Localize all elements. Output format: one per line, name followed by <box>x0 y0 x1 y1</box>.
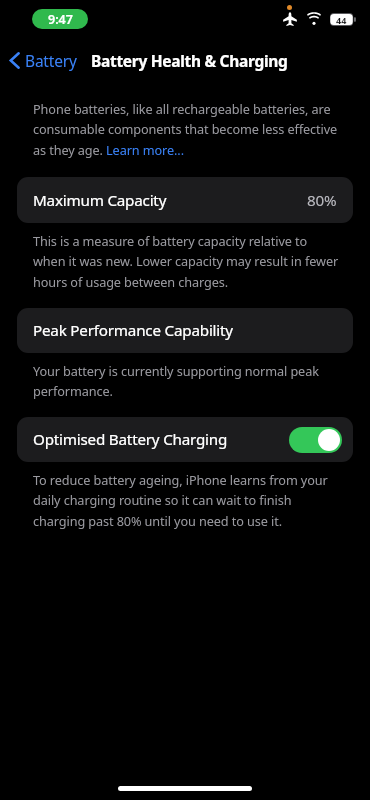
staticText: Maximum Capacity <box>33 190 167 211</box>
staticText: Peak Performance Capability <box>33 320 233 341</box>
button[interactable]: Back <box>0 47 83 74</box>
other: Back <box>9 51 20 70</box>
staticText: Your battery is currently supporting nor… <box>33 362 340 400</box>
button[interactable]: Optimised Battery Charging toggle, on <box>289 427 342 453</box>
staticText: Battery <box>25 50 77 71</box>
staticText: This is a measure of battery capacity re… <box>33 232 340 291</box>
button[interactable]: Optimised Battery Charging <box>17 417 353 462</box>
other: Wi-Fi <box>306 13 322 25</box>
other: Airplane mode <box>283 12 297 26</box>
button[interactable]: Peak Performance Capability <box>17 308 353 353</box>
staticText: 44 <box>336 14 347 26</box>
staticText: Phone batteries, like all rechargeable b… <box>33 100 340 159</box>
button[interactable]: Maximum Capacity <box>17 177 353 223</box>
other: Battery 44 percent <box>330 13 357 26</box>
staticText: Optimised Battery Charging <box>33 429 228 450</box>
staticText: To reduce battery ageing, iPhone learns … <box>33 471 340 530</box>
staticText: 9:47 <box>48 11 73 28</box>
staticText: Battery Health & Charging <box>91 50 288 71</box>
staticText: 80% <box>307 190 337 211</box>
